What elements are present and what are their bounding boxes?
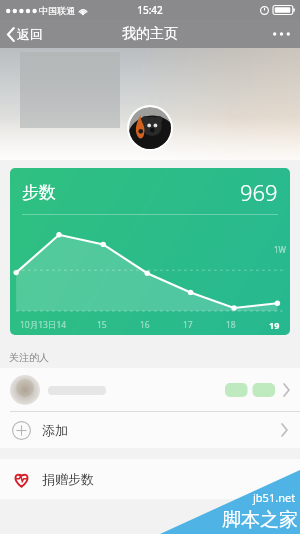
staticText: 捐赠步数 bbox=[42, 471, 94, 487]
staticText: 关注的人 bbox=[9, 351, 49, 364]
staticText: 我的主页 bbox=[122, 25, 178, 43]
button[interactable]: 捐赠步数 bbox=[0, 459, 300, 499]
button[interactable] bbox=[0, 368, 300, 412]
staticText: 19 bbox=[269, 319, 280, 331]
staticText: 1W bbox=[274, 244, 287, 255]
staticText: 16 bbox=[140, 319, 150, 331]
button[interactable]: 添加 bbox=[0, 412, 300, 448]
button[interactable]: 返回 bbox=[0, 22, 53, 46]
staticText: 添加 bbox=[42, 422, 68, 438]
button[interactable]: More options bbox=[263, 24, 300, 44]
staticText: 10月13日14 bbox=[20, 319, 67, 331]
staticText: 18 bbox=[226, 319, 236, 331]
staticText: 969 bbox=[240, 177, 278, 207]
staticText: 步数 bbox=[22, 182, 56, 203]
staticText: 中国联通 bbox=[39, 5, 75, 16]
staticText: 15 bbox=[97, 319, 107, 331]
button[interactable]: 步数 bbox=[10, 168, 290, 335]
staticText: 17 bbox=[183, 319, 193, 331]
staticText: 返回 bbox=[17, 26, 43, 42]
button[interactable]: Profile avatar bbox=[129, 107, 171, 149]
staticText: jb51.net bbox=[253, 490, 296, 505]
staticText: 15:42 bbox=[137, 3, 163, 17]
staticText: 脚本之家 bbox=[222, 508, 298, 532]
